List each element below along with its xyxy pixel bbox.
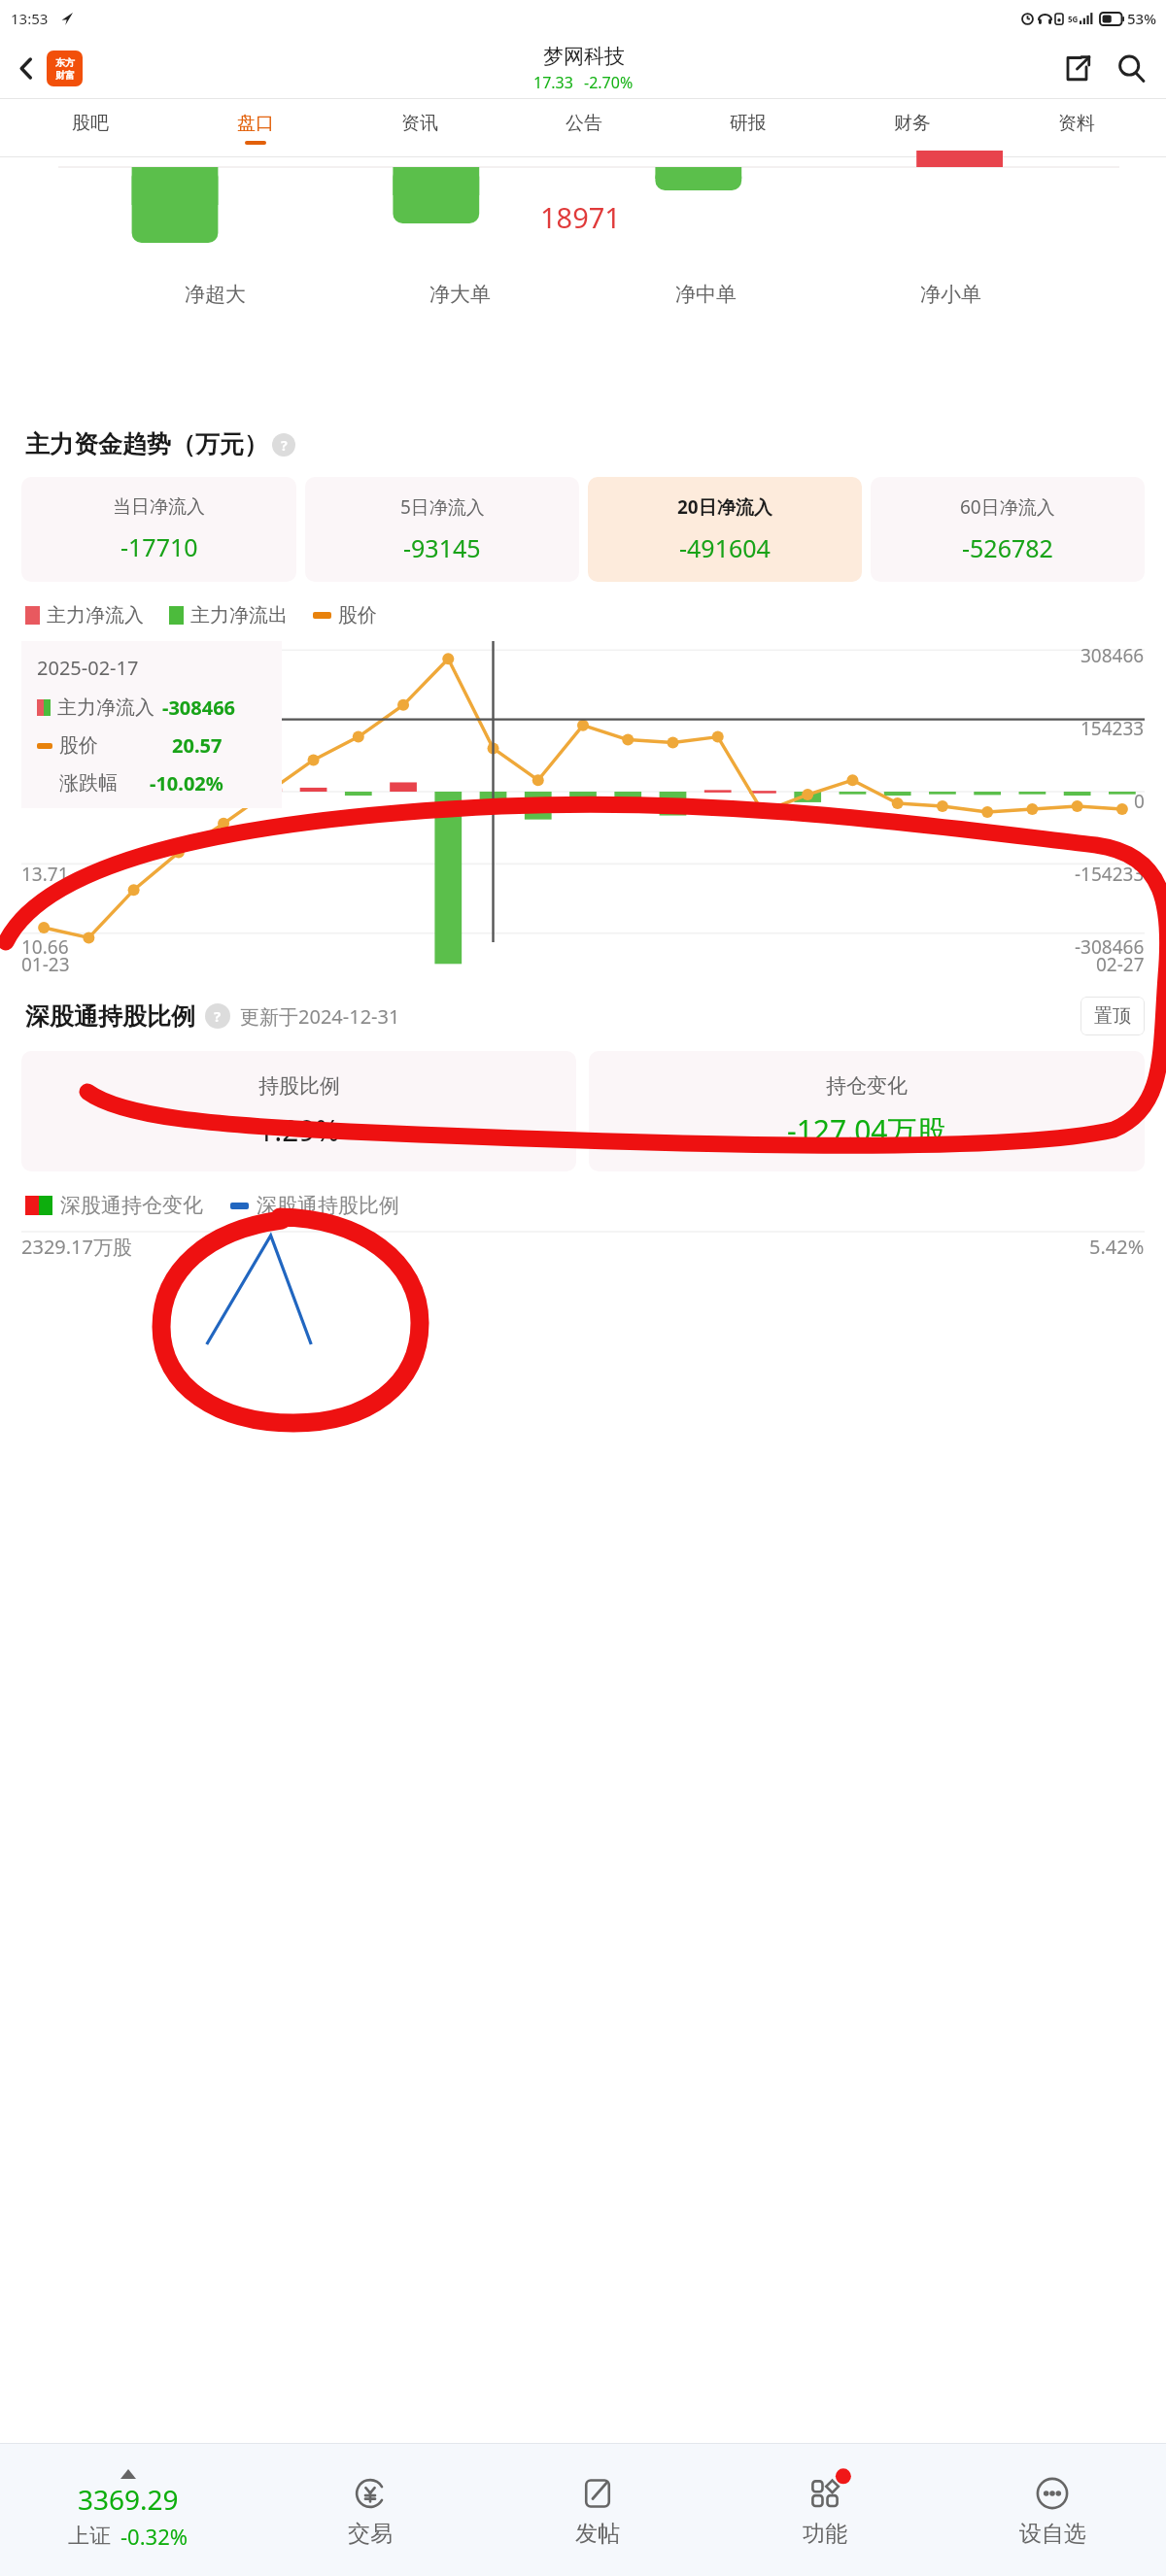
button[interactable]: 资讯 — [337, 99, 501, 157]
staticText: 2025-02-17 — [37, 655, 139, 681]
staticText: 53% — [1127, 9, 1156, 28]
button[interactable]: Search — [1108, 45, 1154, 91]
button[interactable]: 设自选 — [939, 2444, 1166, 2576]
staticText: 主力资金趋势（万元） — [25, 429, 268, 459]
staticText: ? — [281, 436, 288, 455]
staticText: 18971 — [540, 198, 621, 236]
staticText: 公告 — [566, 112, 602, 135]
button[interactable]: 帮助 — [272, 433, 295, 457]
staticText: 5日净流入 — [400, 494, 485, 520]
staticText: 17.33 — [533, 72, 573, 93]
button[interactable]: 当日净流入 — [21, 477, 296, 582]
staticText: 更新于2024-12-31 — [240, 1003, 400, 1030]
staticText: 60日净流入 — [960, 494, 1055, 520]
staticText: 3369.29 — [78, 2481, 179, 2518]
staticText: 0 — [1134, 789, 1145, 814]
staticText: 当日净流入 — [113, 495, 205, 519]
staticText: 20日净流入 — [677, 494, 772, 520]
staticText: 20.57 — [172, 732, 223, 759]
button[interactable]: Back — [6, 48, 47, 88]
staticText: -93145 — [403, 531, 481, 564]
staticText: -491604 — [679, 531, 771, 564]
staticText: 01-23 — [21, 952, 70, 977]
staticText: 308466 — [1080, 643, 1145, 668]
staticText: -17710 — [120, 530, 198, 563]
staticText: 发帖 — [575, 2520, 620, 2548]
button[interactable]: 盘口 — [173, 99, 337, 157]
button[interactable]: 持仓变化 — [589, 1051, 1145, 1171]
staticText: -154233 — [1075, 862, 1145, 887]
button[interactable]: 持股比例 — [21, 1051, 576, 1171]
staticText: 10.66 — [21, 934, 69, 960]
button[interactable]: Share — [1055, 46, 1100, 90]
staticText: 5G — [1068, 14, 1079, 24]
button[interactable]: 研报 — [666, 99, 830, 157]
button[interactable]: 3369.29 — [0, 2444, 257, 2576]
button[interactable]: 帮助 — [205, 1003, 230, 1029]
staticText: 资料 — [1058, 112, 1095, 135]
staticText: -308466 — [162, 695, 236, 721]
staticText: ? — [214, 1006, 222, 1026]
staticText: 5.42% — [1089, 1234, 1145, 1260]
staticText: 154233 — [1080, 716, 1145, 741]
button[interactable]: 60日净流入 — [871, 477, 1145, 582]
staticText: 净小单 — [920, 282, 981, 307]
button[interactable]: 公告 — [501, 99, 666, 157]
staticText: 净超大 — [185, 282, 246, 307]
staticText: 财富 — [55, 69, 75, 82]
staticText: 16.76 — [21, 789, 69, 814]
staticText: 1.29% — [257, 1110, 340, 1150]
staticText: 梦网科技 — [543, 44, 625, 69]
staticText: 02-27 — [1096, 952, 1145, 977]
staticText: 股吧 — [72, 112, 109, 135]
staticText: 盘口 — [237, 112, 274, 135]
staticText: 财务 — [894, 112, 931, 135]
button[interactable]: 股吧 — [8, 99, 173, 157]
staticText: 股价 — [59, 733, 98, 758]
staticText: 资讯 — [401, 112, 438, 135]
staticText: 涨跌幅 — [59, 771, 118, 796]
staticText: 13:53 — [11, 9, 49, 28]
staticText: 净大单 — [429, 282, 491, 307]
button[interactable]: 20日净流入 — [588, 477, 862, 582]
staticText: -308466 — [1075, 934, 1145, 960]
staticText: 研报 — [730, 112, 767, 135]
staticText: 置顶 — [1094, 1004, 1131, 1028]
staticText: 2329.17万股 — [21, 1234, 132, 1260]
button[interactable]: 东方财富 — [47, 51, 83, 86]
button[interactable]: 交易 — [257, 2444, 484, 2576]
button[interactable]: 功能 — [711, 2444, 939, 2576]
staticText: 设自选 — [1019, 2520, 1086, 2548]
staticText: 股价 — [338, 603, 377, 627]
staticText: 主力净流出 — [190, 603, 288, 627]
button[interactable]: 发帖 — [484, 2444, 711, 2576]
staticText: 主力净流入 — [47, 603, 144, 627]
staticText: 22.86 — [21, 643, 69, 668]
staticText: 19.81 — [21, 716, 69, 741]
staticText: 主力净流入 — [57, 695, 154, 720]
staticText: 深股通持股比例 — [257, 1193, 399, 1218]
staticText: -10.02% — [150, 770, 223, 797]
staticText: -0.32% — [120, 2522, 189, 2551]
staticText: 上证 — [68, 2523, 111, 2550]
staticText: 持仓变化 — [826, 1073, 908, 1099]
staticText: 交易 — [348, 2520, 393, 2548]
staticText: 东方 — [55, 56, 75, 69]
staticText: -127.04万股 — [787, 1110, 946, 1150]
staticText: -2.70% — [584, 72, 634, 93]
staticText: 净中单 — [675, 282, 737, 307]
staticText: -526782 — [962, 531, 1053, 564]
button[interactable]: 5日净流入 — [305, 477, 579, 582]
button[interactable]: 资料 — [994, 99, 1158, 157]
button[interactable]: 财务 — [830, 99, 994, 157]
button[interactable]: 置顶 — [1080, 997, 1145, 1035]
staticText: 功能 — [803, 2520, 847, 2548]
staticText: 持股比例 — [258, 1073, 340, 1099]
staticText: 深股通持股比例 — [25, 1001, 195, 1032]
staticText: 13.71 — [21, 862, 69, 887]
staticText: 深股通持仓变化 — [60, 1193, 203, 1218]
